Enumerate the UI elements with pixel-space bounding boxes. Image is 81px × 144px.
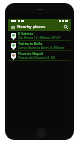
- button[interactable]: Search: [63, 24, 69, 30]
- staticText: Nearby places: [17, 24, 46, 30]
- button[interactable]: Navigate up: [10, 24, 16, 30]
- staticText: Piazza del Duomo 8, Mi: [18, 55, 55, 60]
- button[interactable]: Pizzeria Napoli: [8, 51, 71, 61]
- button[interactable]: Trattoria Bella: [8, 41, 71, 51]
- staticText: Trattoria Bella: [18, 41, 43, 46]
- staticText: Corso Buenos Aires 4, Milano: [18, 45, 65, 50]
- staticText: Il Salotto: [18, 31, 34, 36]
- staticText: Via Roma 12, Milano 20121: [18, 35, 61, 40]
- staticText: Pizzeria Napoli: [18, 51, 44, 56]
- button[interactable]: Il Salotto: [8, 31, 71, 41]
